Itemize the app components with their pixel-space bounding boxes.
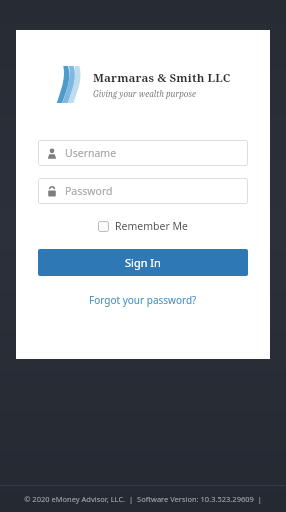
staticText: Username (65, 146, 117, 160)
staticText: Remember Me (115, 219, 188, 233)
other: Username (47, 148, 57, 159)
staticText: © 2020 eMoney Advisor, LLC. | Software V… (24, 494, 262, 504)
button[interactable]: Forgot your password? (85, 291, 201, 309)
staticText: Marmaras & Smith LLC (93, 70, 231, 86)
other: Password (47, 186, 57, 197)
staticText: Giving your wealth purpose (93, 88, 197, 99)
button[interactable]: Username (38, 140, 248, 166)
button[interactable]: Sign In (38, 249, 248, 276)
staticText: Password (65, 184, 113, 198)
button[interactable]: Password (38, 178, 248, 204)
staticText: Sign In (125, 255, 161, 270)
button[interactable]: Remember Me (95, 217, 191, 235)
staticText: Forgot your password? (89, 293, 197, 307)
